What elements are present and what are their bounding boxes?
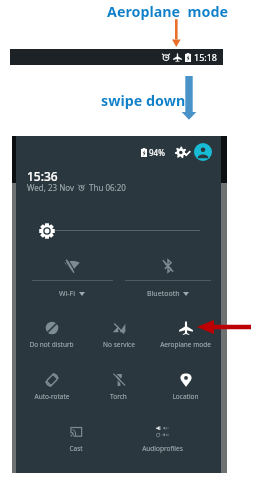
staticText: Wi-Fi: [59, 289, 76, 299]
staticText: Wed, 23 Nov: [27, 182, 74, 193]
button[interactable]: swipe down: [101, 91, 186, 110]
staticText: Aeroplane mode: [107, 2, 229, 21]
button[interactable]: Aeroplane mode: [152, 321, 219, 349]
staticText: 15:36: [27, 168, 58, 184]
button[interactable]: No service: [85, 321, 152, 349]
staticText: 15:18: [194, 51, 218, 63]
staticText: Location: [172, 392, 199, 401]
staticText: 94%: [149, 147, 165, 158]
button[interactable]: Location: [152, 373, 219, 401]
staticText: Auto-rotate: [34, 392, 70, 401]
staticText: swipe down: [101, 91, 186, 110]
staticText: Cast: [69, 444, 83, 453]
staticText: Torch: [110, 392, 127, 401]
button[interactable]: Audioprofiles: [129, 425, 196, 453]
button[interactable]: Do not disturb: [18, 321, 85, 349]
button[interactable]: Torch: [85, 373, 152, 401]
button[interactable]: Wi-Fi: [48, 288, 96, 299]
button[interactable]: Auto-rotate: [18, 373, 85, 401]
button[interactable]: Bluetooth: [144, 288, 192, 299]
staticText: Bluetooth: [147, 289, 180, 299]
button[interactable]: User profile: [194, 143, 212, 161]
staticText: No service: [103, 340, 135, 349]
staticText: Do not disturb: [29, 340, 74, 349]
button[interactable]: Aeroplane mode: [107, 2, 229, 21]
staticText: Thu 06:20: [89, 182, 126, 193]
button[interactable]: Cast: [42, 425, 109, 453]
staticText: Audioprofiles: [142, 444, 183, 453]
staticText: Aeroplane mode: [160, 340, 211, 349]
button[interactable]: Settings: [174, 144, 191, 161]
